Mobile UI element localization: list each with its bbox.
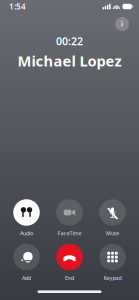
staticText: FaceTime [57,230,81,237]
button[interactable]: Add [6,244,46,281]
button[interactable]: FaceTime [49,199,89,237]
staticText: Audio [20,230,33,237]
staticText: Michael Lopez [17,51,121,71]
staticText: Mute [106,230,119,237]
button[interactable]: Call details [114,16,130,32]
staticText: Keypad [103,274,121,281]
staticText: 00:22 [56,34,83,48]
staticText: 1:54 [9,1,26,12]
button[interactable]: Keypad [92,244,132,281]
staticText: End [65,274,74,281]
button[interactable]: Mute [92,199,132,237]
staticText: Add [22,274,31,281]
button[interactable]: Audio [6,199,46,237]
button[interactable]: End [49,244,89,281]
